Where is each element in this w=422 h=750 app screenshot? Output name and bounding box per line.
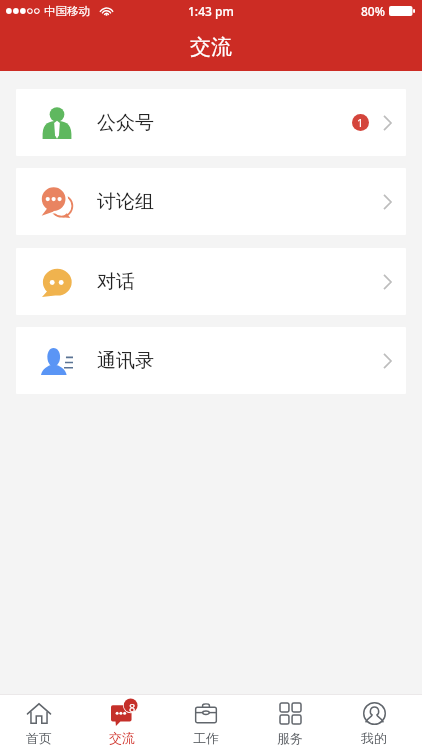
staticText: 工作 [193, 730, 219, 746]
button[interactable]: 通讯录 [16, 327, 406, 394]
staticText: 首页 [26, 730, 52, 746]
staticText: 80% [361, 3, 385, 19]
button[interactable]: 首页 [0, 695, 80, 750]
staticText: 1 [357, 115, 364, 130]
button[interactable]: 8 [80, 695, 164, 750]
staticText: 我的 [361, 730, 387, 746]
staticText: 交流 [109, 730, 135, 746]
button[interactable]: 对话 [16, 248, 406, 315]
button[interactable]: 我的 [332, 695, 416, 750]
button[interactable]: 服务 [248, 695, 332, 750]
staticText: 通讯录 [97, 349, 154, 373]
staticText: 中国移动 [44, 4, 90, 18]
staticText: 8 [129, 700, 136, 714]
button[interactable]: 公众号 [16, 89, 406, 156]
button[interactable]: 工作 [164, 695, 248, 750]
staticText: 服务 [277, 730, 303, 746]
staticText: 对话 [97, 270, 135, 294]
staticText: 1:43 pm [188, 3, 234, 19]
staticText: 交流 [190, 34, 232, 60]
staticText: 公众号 [97, 111, 154, 135]
staticText: 讨论组 [97, 190, 154, 214]
button[interactable]: 讨论组 [16, 168, 406, 235]
